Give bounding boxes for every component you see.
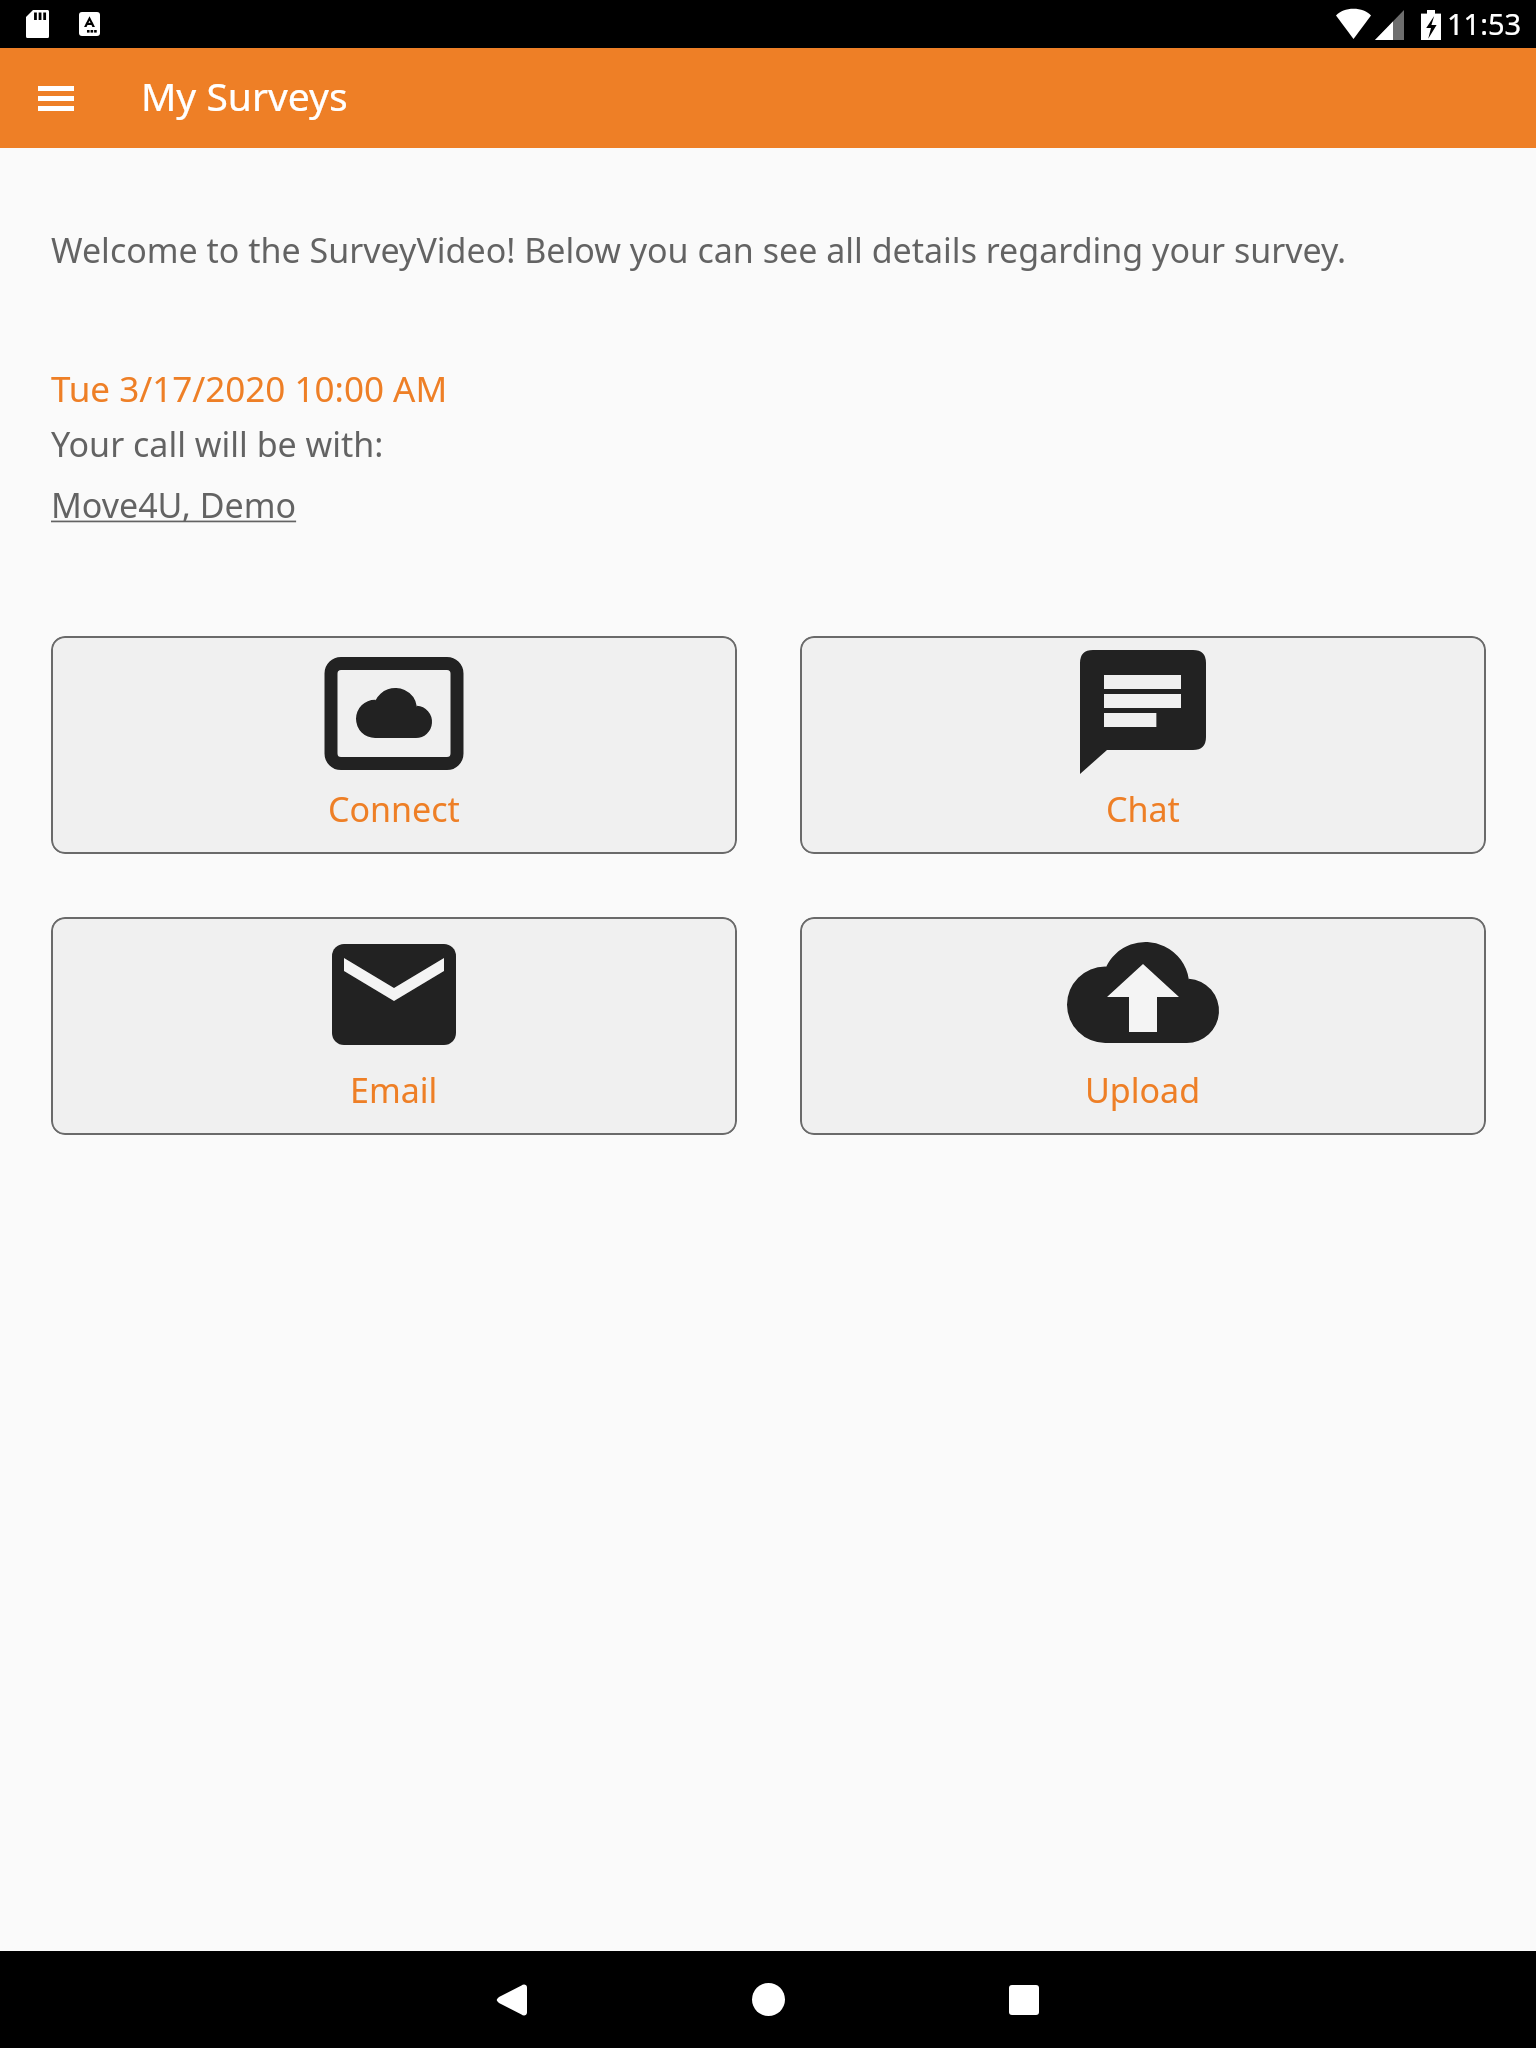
button[interactable]: Home (720, 1951, 816, 2048)
staticText: Upload (1085, 1067, 1201, 1113)
staticText: Email (350, 1067, 438, 1113)
staticText: Connect (328, 786, 460, 832)
button[interactable]: Move4U, Demo (51, 482, 297, 528)
staticText: Welcome to the SurveyVideo! Below you ca… (51, 227, 1347, 273)
staticText: 11:53 (1447, 4, 1522, 43)
button[interactable]: Open navigation menu (22, 64, 90, 132)
other: SD card (26, 10, 49, 38)
staticText: Your call will be with: (51, 421, 384, 467)
other: Screenshot (79, 12, 100, 36)
button[interactable]: Back (464, 1951, 560, 2048)
button[interactable]: Email (51, 917, 737, 1135)
button[interactable]: Upload (800, 917, 1486, 1135)
button[interactable]: Chat (800, 636, 1486, 854)
staticText: Tue 3/17/2020 10:00 AM (51, 365, 448, 413)
staticText: Move4U, Demo (51, 482, 297, 528)
button[interactable]: Recent apps (976, 1951, 1072, 2048)
staticText: My Surveys (141, 69, 348, 122)
staticText: Chat (1106, 786, 1180, 832)
button[interactable]: Connect (51, 636, 737, 854)
